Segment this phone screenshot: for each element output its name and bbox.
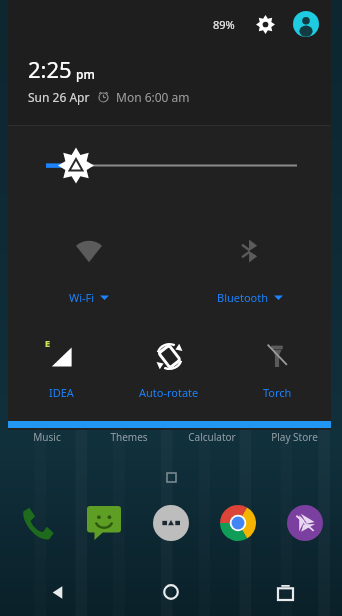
staticText: Torch <box>263 385 292 400</box>
button[interactable]: Apps <box>148 500 194 546</box>
button[interactable]: Torch <box>223 319 331 414</box>
staticText: Bluetooth <box>217 290 269 305</box>
staticText: Auto-rotate <box>139 385 199 400</box>
button[interactable]: Settings <box>251 10 279 38</box>
button[interactable]: Calculator <box>170 430 253 444</box>
button[interactable]: Recents <box>228 568 342 616</box>
staticText: IDEA <box>49 385 74 400</box>
staticText: Sun 26 Apr <box>28 89 90 105</box>
button[interactable]: Auto-rotate <box>115 319 223 414</box>
button[interactable]: Play Store <box>253 430 336 444</box>
staticText: Music <box>33 430 61 444</box>
staticText: Mon 6:00 am <box>116 89 190 105</box>
staticText: E <box>45 337 51 349</box>
staticText: pm <box>76 66 95 82</box>
staticText: Play Store <box>271 430 318 444</box>
staticText: 89% <box>213 17 235 32</box>
button[interactable]: E <box>8 319 115 414</box>
staticText: Calculator <box>188 430 236 444</box>
staticText: Wi-Fi <box>69 290 95 305</box>
button[interactable]: User <box>293 11 319 37</box>
button[interactable]: Music <box>6 430 88 444</box>
button[interactable]: Brightness <box>8 126 331 214</box>
button[interactable]: Wi-Fi <box>8 214 169 319</box>
button[interactable]: Messaging <box>81 500 127 546</box>
button[interactable]: Back <box>0 568 114 616</box>
staticText: 2:25 <box>28 54 72 84</box>
button[interactable]: Camera <box>282 500 328 546</box>
button[interactable]: Themes <box>88 430 170 444</box>
staticText: Themes <box>110 430 148 444</box>
button[interactable]: Bluetooth <box>169 214 331 319</box>
button[interactable]: Home <box>114 568 228 616</box>
button[interactable]: Chrome <box>215 500 261 546</box>
button[interactable]: Phone <box>14 500 60 546</box>
